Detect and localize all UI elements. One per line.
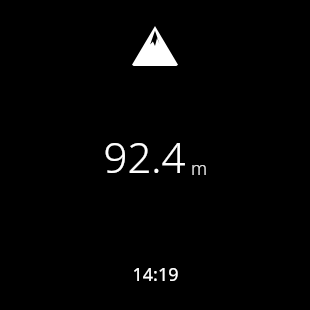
- button[interactable]: 92.4: [103, 128, 208, 185]
- staticText: 14:19: [132, 262, 179, 287]
- staticText: 92.4: [103, 128, 186, 185]
- staticText: m: [191, 156, 208, 181]
- button[interactable]: Altitude: [132, 26, 178, 66]
- button[interactable]: 14:19: [132, 262, 179, 287]
